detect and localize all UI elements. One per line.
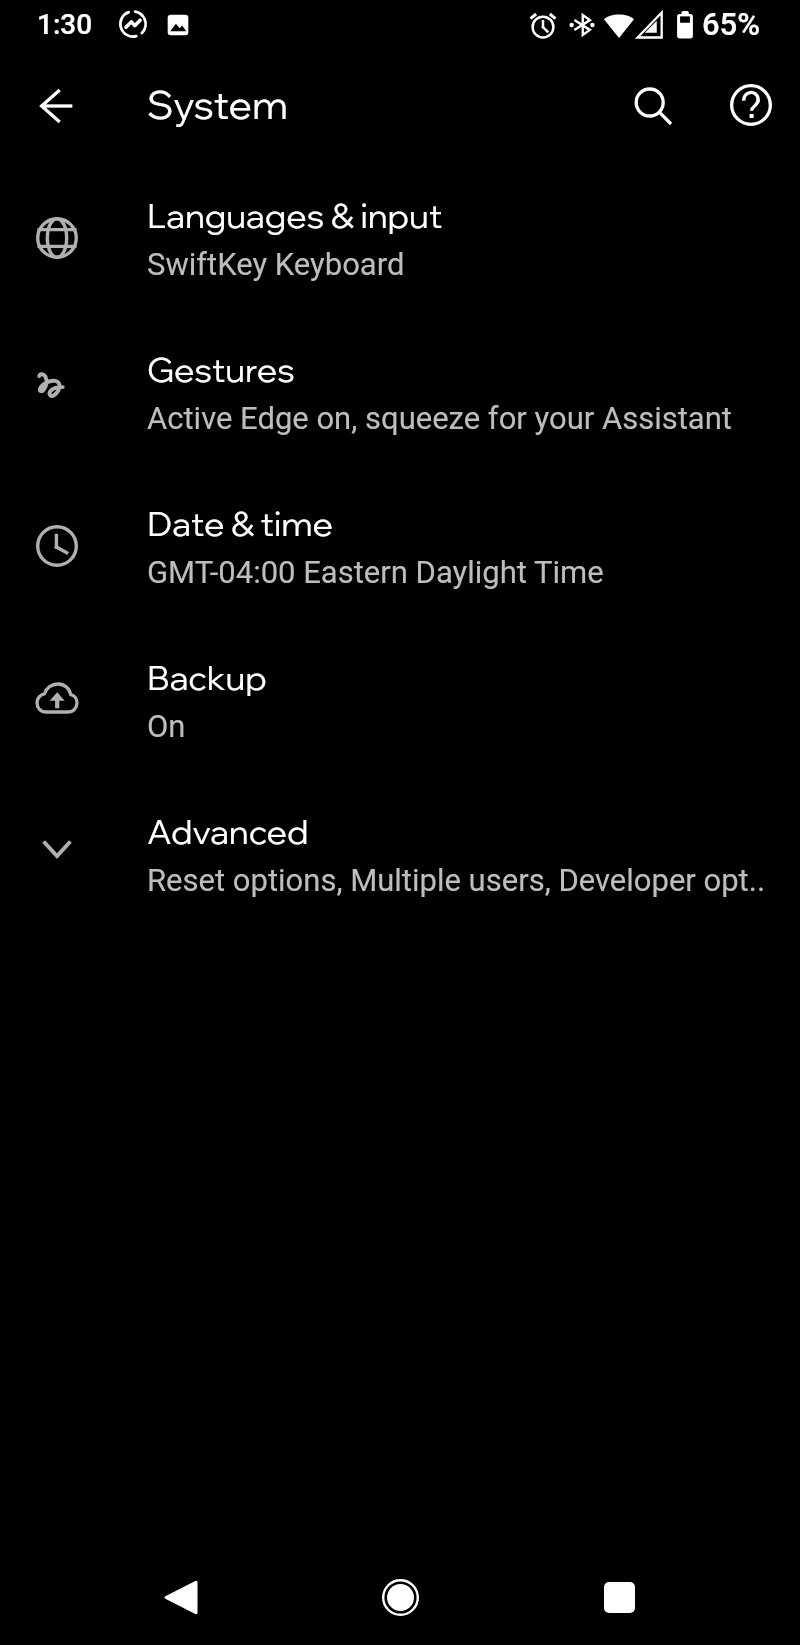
- staticText: 1:30: [37, 8, 93, 41]
- button[interactable]: Backup: [0, 620, 800, 774]
- button[interactable]: Home: [364, 1561, 436, 1633]
- button[interactable]: Recent apps: [583, 1561, 655, 1633]
- staticText: Date & time: [147, 502, 333, 545]
- staticText: Gestures: [147, 348, 295, 391]
- button[interactable]: Search: [620, 74, 688, 142]
- button[interactable]: Languages & input: [0, 158, 800, 312]
- staticText: Languages & input: [147, 194, 443, 237]
- button[interactable]: Navigate up: [23, 72, 91, 140]
- staticText: On: [147, 708, 186, 744]
- staticText: Backup: [147, 656, 267, 699]
- staticText: Reset options, Multiple users, Developer…: [147, 862, 766, 898]
- staticText: Advanced: [147, 810, 309, 853]
- staticText: GMT-04:00 Eastern Daylight Time: [147, 554, 604, 590]
- staticText: 65%: [702, 6, 761, 42]
- button[interactable]: Help: [717, 71, 785, 139]
- button[interactable]: Gestures: [0, 312, 800, 466]
- staticText: System: [147, 80, 288, 129]
- staticText: Active Edge on, squeeze for your Assista…: [147, 400, 732, 436]
- button[interactable]: Advanced: [0, 774, 800, 928]
- button[interactable]: Date & time: [0, 466, 800, 620]
- staticText: SwiftKey Keyboard: [147, 246, 405, 282]
- button[interactable]: Back: [145, 1561, 217, 1633]
